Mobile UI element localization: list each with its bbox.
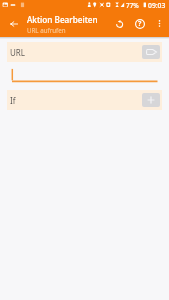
button[interactable]: More options [150, 10, 169, 37]
staticText: 77% [126, 1, 139, 10]
button[interactable]: If [7, 90, 162, 110]
button[interactable]: URL [7, 42, 162, 62]
button[interactable]: Add [142, 93, 160, 107]
staticText: 09:03 [148, 1, 166, 10]
button[interactable]: Undo [109, 10, 129, 37]
staticText: ? [138, 19, 142, 29]
button[interactable]: Back [0, 10, 27, 37]
staticText: URL aufrufen [27, 26, 66, 34]
button[interactable] [0, 68, 169, 82]
button[interactable]: Help [129, 10, 150, 37]
button[interactable]: Tag [142, 45, 160, 59]
staticText: If [10, 95, 16, 106]
staticText: URL [10, 47, 26, 58]
staticText: Aktion Bearbeiten [27, 14, 98, 25]
